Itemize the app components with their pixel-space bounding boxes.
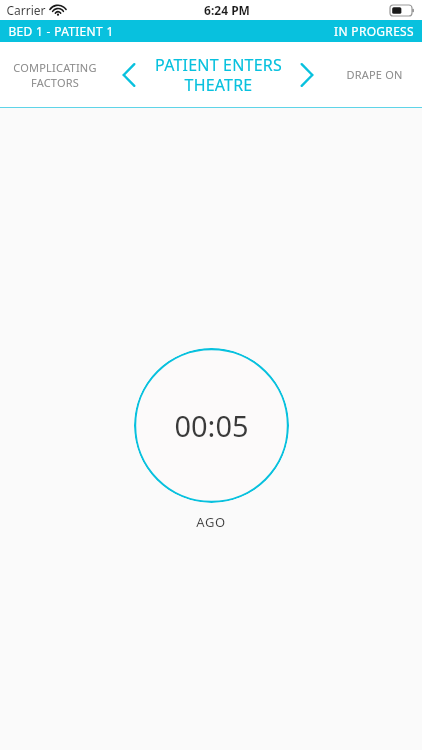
staticText: BED 1 - PATIENT 1 (8, 23, 114, 39)
button[interactable]: Previous step (110, 42, 148, 107)
staticText: 6:24 PM (204, 2, 250, 18)
staticText: DRAPE ON (346, 67, 403, 82)
button[interactable]: BED 1 - PATIENT 1 (0, 20, 422, 42)
staticText: PATIENT ENTERS THEATRE (155, 54, 282, 95)
staticText: COMPLICATING FACTORS (13, 60, 97, 90)
staticText: Carrier (6, 2, 46, 18)
button[interactable]: Next step (288, 42, 326, 107)
staticText: AGO (196, 513, 226, 531)
staticText: 00:05 (174, 406, 249, 445)
button[interactable]: PATIENT ENTERS THEATRE (148, 42, 288, 107)
button[interactable]: COMPLICATING FACTORS (0, 42, 110, 107)
button[interactable]: 00:05 (134, 348, 289, 503)
staticText: IN PROGRESS (334, 23, 414, 39)
button[interactable]: DRAPE ON (326, 42, 422, 107)
